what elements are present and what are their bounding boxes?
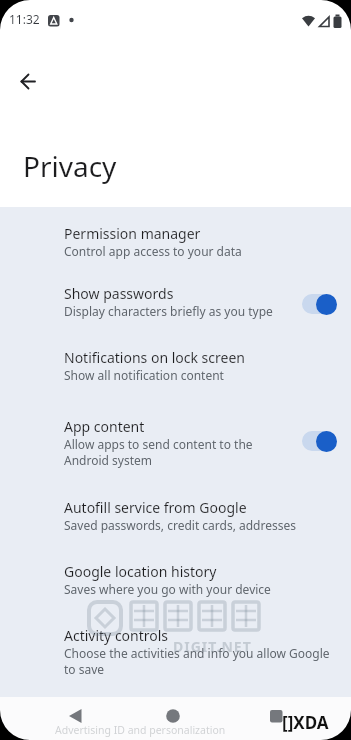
button[interactable]: [243, 697, 303, 740]
staticText: Show passwords: [64, 284, 174, 303]
staticText: Permission manager: [64, 224, 201, 243]
staticText: Choose the activities and info you allow…: [64, 645, 330, 661]
staticText: Advertising ID and personalization: [55, 723, 226, 737]
button[interactable]: Show passwords: [0, 272, 351, 336]
staticText: Display characters briefly as you type: [64, 303, 273, 319]
button[interactable]: [8, 61, 48, 101]
staticText: Notifications on lock screen: [64, 348, 245, 367]
staticText: Privacy: [23, 147, 117, 185]
button[interactable]: Autofill service from Google: [0, 486, 351, 550]
staticText: Saves where you go with your device: [64, 581, 271, 597]
staticText: Control app access to your data: [64, 243, 242, 259]
staticText: Show all notification content: [64, 367, 224, 383]
staticText: Activity controls: [64, 626, 169, 645]
staticText: App content: [64, 417, 145, 436]
staticText: Android system: [64, 452, 152, 468]
staticText: DIGIT.NET: [173, 637, 252, 656]
button[interactable]: [40, 697, 100, 740]
button[interactable]: [146, 697, 206, 740]
button[interactable]: Notifications on lock screen: [0, 336, 351, 405]
button[interactable]: Activity controls: [0, 614, 351, 695]
button[interactable]: Google location history: [0, 550, 351, 614]
staticText: Allow apps to send content to the: [64, 436, 253, 452]
staticText: 11:32: [9, 11, 40, 27]
button[interactable]: App content: [0, 405, 351, 486]
staticText: Autofill service from Google: [64, 498, 247, 517]
staticText: []XDA: [282, 711, 329, 734]
staticText: to save: [64, 661, 105, 677]
staticText: Google location history: [64, 562, 217, 581]
staticText: Saved passwords, credit cards, addresses: [64, 517, 296, 533]
button[interactable]: Permission manager: [0, 212, 351, 272]
